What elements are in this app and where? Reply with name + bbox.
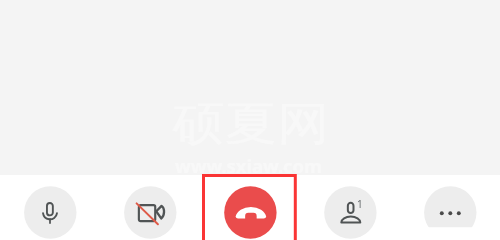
button[interactable]: Mute microphone: [2, 174, 97, 240]
button[interactable]: End call: [202, 174, 297, 240]
button[interactable]: More options: [402, 174, 497, 240]
button[interactable]: Show participants, 1 in call: [302, 174, 397, 240]
button[interactable]: Turn camera on: [102, 174, 197, 240]
